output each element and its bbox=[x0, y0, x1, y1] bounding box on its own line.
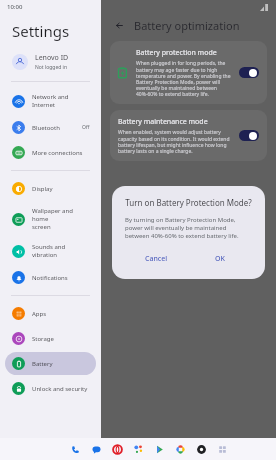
staticText: Not logged in bbox=[35, 64, 67, 71]
staticText: Notifications bbox=[32, 274, 90, 282]
staticText: OK bbox=[215, 254, 225, 264]
button[interactable]: Apps bbox=[5, 302, 96, 325]
button[interactable]: Network and Internet bbox=[5, 88, 96, 114]
button[interactable]: Battery bbox=[5, 352, 96, 375]
staticText: Turn on Battery Protection Mode? bbox=[125, 197, 252, 208]
staticText: Battery maintenance mode bbox=[118, 117, 208, 127]
staticText: Settings bbox=[12, 21, 70, 41]
button[interactable]: Unlock and security bbox=[5, 377, 96, 400]
button[interactable]: Battery protection mode bbox=[110, 41, 267, 104]
button[interactable]: Sounds and vibration bbox=[5, 238, 96, 264]
button[interactable]: Bluetooth bbox=[5, 116, 96, 139]
staticText: Network and Internet bbox=[32, 93, 90, 109]
staticText: By turning on Battery Protection Mode, p… bbox=[125, 216, 252, 240]
button[interactable]: Toggle bbox=[239, 130, 259, 141]
staticText: Storage bbox=[32, 335, 90, 343]
staticText: More connections bbox=[32, 149, 90, 157]
staticText: Battery bbox=[32, 360, 90, 368]
staticText: Off bbox=[82, 124, 90, 131]
button[interactable]: Photos bbox=[173, 442, 187, 456]
button[interactable]: Storage bbox=[5, 327, 96, 350]
staticText: Lenovo ID bbox=[35, 53, 69, 63]
staticText: Display bbox=[32, 185, 90, 193]
staticText: Battery protection mode bbox=[136, 48, 217, 58]
button[interactable]: More connections bbox=[5, 141, 96, 164]
button[interactable]: Messages bbox=[89, 442, 103, 456]
button[interactable]: Back bbox=[111, 17, 127, 33]
button[interactable]: Phone bbox=[68, 442, 82, 456]
staticText: Unlock and security bbox=[32, 385, 90, 393]
button[interactable]: Lenovo ID bbox=[0, 50, 101, 76]
staticText: Sounds and vibration bbox=[32, 243, 90, 259]
button[interactable]: Cancel bbox=[136, 250, 177, 268]
staticText: Wallpaper and home screen bbox=[32, 207, 90, 231]
button[interactable]: Settings bbox=[194, 442, 208, 456]
button[interactable]: Wallpaper and home screen bbox=[5, 202, 96, 236]
staticText: Cancel bbox=[145, 254, 168, 264]
button[interactable]: Play Store bbox=[152, 442, 166, 456]
button[interactable]: All apps bbox=[215, 442, 229, 456]
button[interactable]: Toggle bbox=[239, 67, 259, 78]
staticText: 10:00 bbox=[7, 3, 23, 11]
staticText: When enabled, system would adjust batter… bbox=[118, 129, 233, 154]
button[interactable]: Opera bbox=[110, 442, 124, 456]
staticText: When plugged in for long periods, the ba… bbox=[136, 60, 233, 97]
button[interactable]: Notifications bbox=[5, 266, 96, 289]
button[interactable]: Display bbox=[5, 177, 96, 200]
button[interactable]: OK bbox=[206, 250, 234, 268]
staticText: Apps bbox=[32, 310, 90, 318]
staticText: Battery optimization bbox=[134, 18, 240, 33]
staticText: Bluetooth bbox=[32, 124, 82, 132]
button[interactable]: Assistant bbox=[131, 442, 145, 456]
button[interactable]: Battery maintenance mode bbox=[110, 110, 267, 161]
